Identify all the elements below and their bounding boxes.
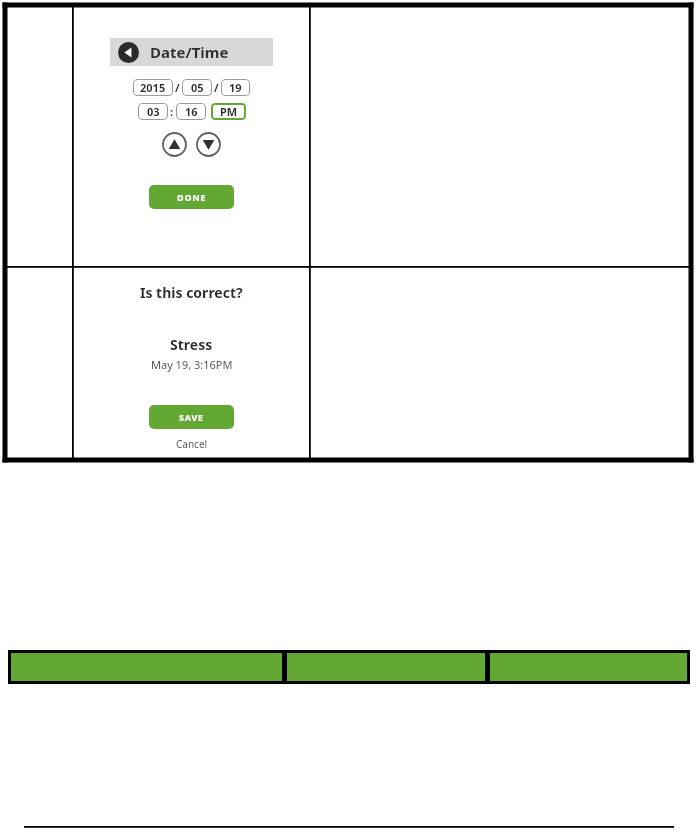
staticText: / [214,80,219,95]
staticText: May 19, 3:16PM [151,357,233,372]
button[interactable]: DONE [149,185,234,209]
staticText: : [170,104,174,119]
staticText: 05 [191,80,204,95]
button[interactable]: Decrease value [196,132,221,157]
staticText: / [175,80,180,95]
staticText: 19 [229,80,242,95]
button[interactable]: 2015 [133,79,173,96]
staticText: Is this correct? [140,283,243,302]
staticText: SAVE [179,411,204,423]
button[interactable]: PM [211,103,246,120]
button[interactable]: Increase value [162,132,187,157]
button[interactable]: Cancel [176,437,208,451]
staticText: 2015 [140,80,166,95]
staticText: 16 [185,104,198,119]
button[interactable]: 19 [221,79,250,96]
staticText: Stress [170,335,213,354]
button[interactable]: 16 [176,103,206,120]
button[interactable]: 03 [138,103,168,120]
staticText: DONE [177,191,207,203]
staticText: Date/Time [150,42,229,62]
button[interactable]: 05 [182,79,212,96]
button[interactable]: SAVE [149,405,234,429]
other: Back [118,42,139,63]
staticText: PM [220,104,238,119]
staticText: 03 [147,104,160,119]
button[interactable]: Back [110,38,273,66]
